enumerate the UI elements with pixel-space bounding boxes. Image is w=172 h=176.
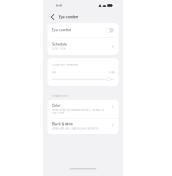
staticText: Eye comfort: [52, 28, 71, 32]
staticText: 9:41: [56, 4, 62, 7]
staticText: Color: [52, 104, 60, 107]
staticText: Schedule: [52, 43, 67, 46]
staticText: Screen colours are displayed normally, s…: [52, 109, 104, 114]
staticText: Low: [52, 71, 56, 74]
staticText: Black & white: [52, 122, 73, 126]
button[interactable]: Back: [50, 13, 55, 20]
staticText: 22:00 - 07:00: [52, 47, 65, 50]
staticText: High: [109, 71, 114, 74]
staticText: Display effects: [52, 94, 68, 97]
button[interactable]: Black & white: [47, 118, 118, 134]
button[interactable]: Color: [47, 100, 118, 118]
staticText: Eye comfort: [59, 15, 78, 19]
button[interactable]: Schedule: [47, 38, 118, 55]
button[interactable]: Eye comfort: [47, 23, 118, 37]
staticText: Screen turns grey, reducing colour distr…: [52, 127, 98, 130]
staticText: Screen color temperature: [52, 63, 78, 66]
